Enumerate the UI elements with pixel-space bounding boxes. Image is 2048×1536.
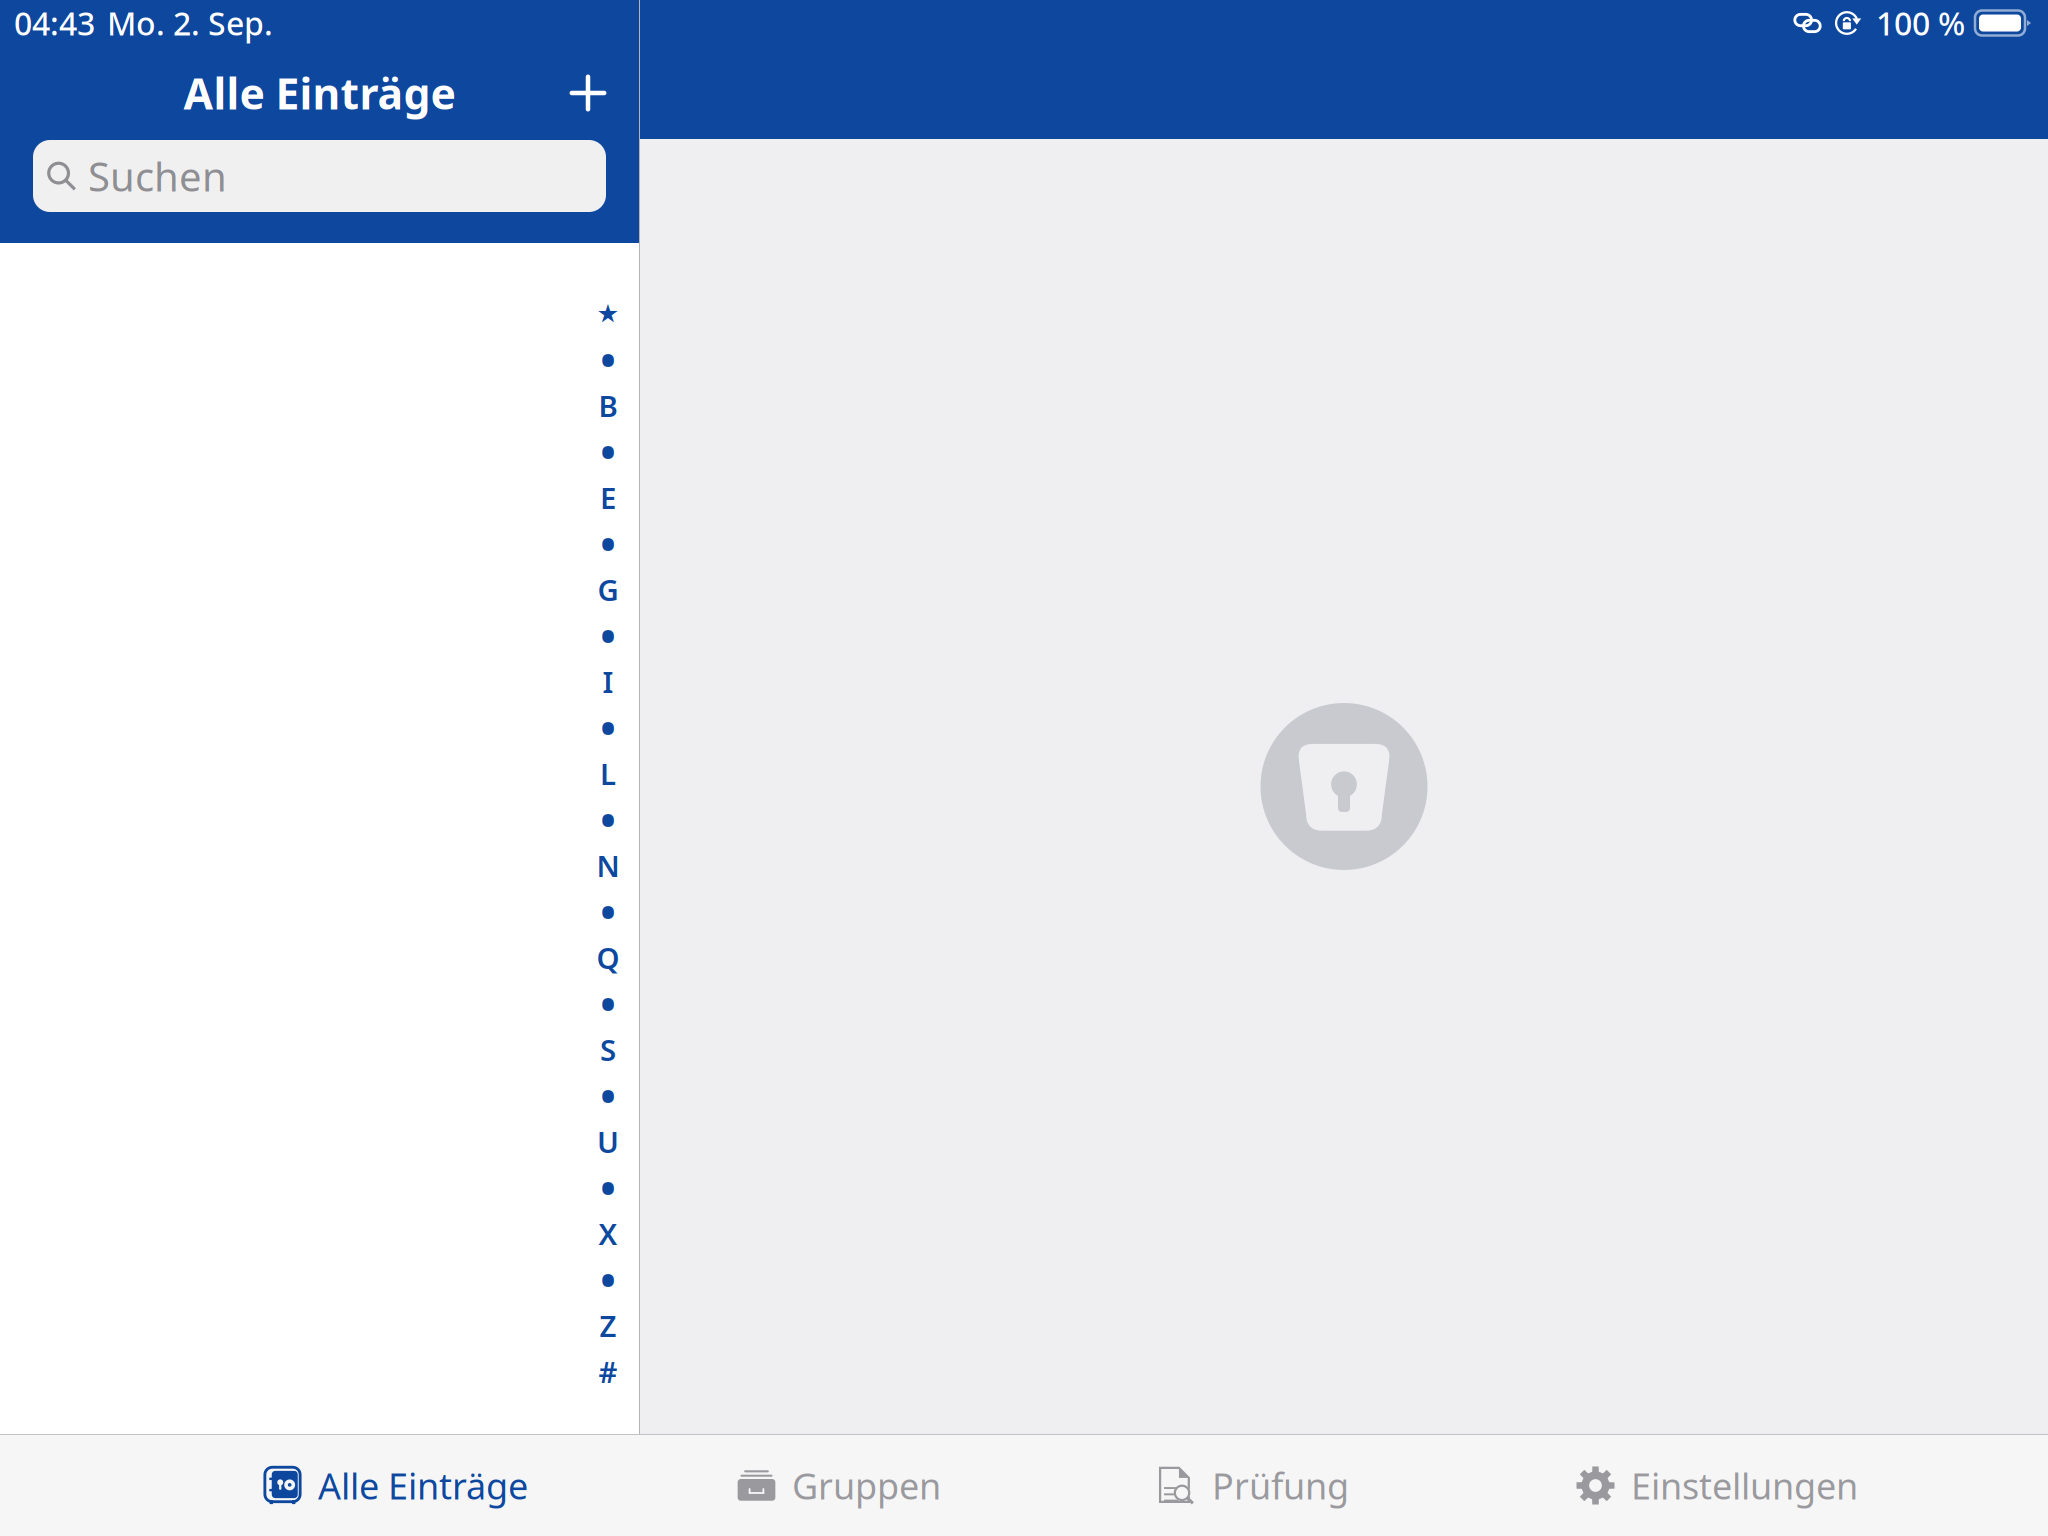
button[interactable]: Gruppen [712,1435,1132,1536]
staticText: E [600,478,616,517]
staticText: • [599,1157,616,1218]
staticText: Q [596,938,619,977]
staticText: L [600,754,616,793]
button[interactable]: Einstellungen [1551,1435,1970,1536]
staticText: • [599,1065,616,1126]
button[interactable]: Prüfung [1132,1435,1551,1536]
button[interactable]: Alle Einträge [238,1435,712,1536]
staticText: Alle Einträge [318,1462,528,1509]
staticText: 100 % [1876,2,1965,44]
staticText: Z [599,1306,616,1345]
staticText: G [597,570,618,609]
staticText: • [599,329,616,390]
staticText: Alle Einträge [183,65,455,121]
staticText: Prüfung [1212,1462,1349,1509]
staticText: B [598,386,617,425]
staticText: ★ [596,299,619,328]
staticText: Suchen [88,149,227,202]
staticText: S [600,1030,616,1069]
staticText: • [599,1249,616,1310]
staticText: • [599,973,616,1034]
staticText: X [598,1214,617,1253]
staticText: Einstellungen [1631,1462,1858,1509]
staticText: Gruppen [792,1462,941,1509]
staticText: Mo. 2. Sep. [107,2,273,44]
staticText: # [598,1352,617,1391]
staticText: • [599,605,616,666]
staticText: • [599,421,616,482]
staticText: • [599,513,616,574]
staticText: I [602,662,613,701]
button[interactable]: Neuer Eintrag [559,64,617,122]
staticText: N [596,846,619,885]
staticText: • [599,789,616,850]
button[interactable]: Suchen [33,140,606,212]
staticText: • [599,697,616,758]
staticText: U [597,1122,619,1161]
button[interactable]: Abschnittsindex [579,295,639,1381]
staticText: • [599,881,616,942]
staticText: 04:43 [14,2,95,44]
